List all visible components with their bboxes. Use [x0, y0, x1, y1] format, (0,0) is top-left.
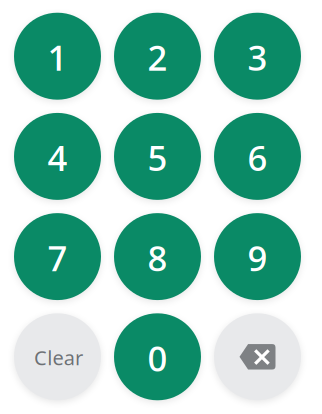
staticText: 4 — [47, 134, 67, 181]
button[interactable]: 4 — [14, 113, 101, 200]
button[interactable]: 2 — [114, 13, 201, 100]
staticText: 5 — [147, 134, 167, 181]
button[interactable]: 7 — [14, 213, 101, 300]
button[interactable]: 5 — [114, 113, 201, 200]
staticText: Clear — [34, 344, 83, 371]
staticText: 6 — [247, 134, 267, 181]
button[interactable]: 1 — [14, 13, 101, 100]
staticText: 7 — [47, 234, 67, 281]
staticText: 1 — [47, 34, 67, 81]
staticText: 2 — [147, 34, 167, 81]
staticText: 9 — [247, 234, 267, 281]
button[interactable]: 0 — [114, 313, 201, 400]
staticText: 8 — [147, 234, 167, 281]
button[interactable]: 3 — [214, 13, 301, 100]
button[interactable]: Delete — [214, 313, 301, 400]
staticText: 0 — [147, 334, 167, 382]
button[interactable]: 6 — [214, 113, 301, 200]
staticText: 3 — [247, 34, 267, 81]
button[interactable]: 8 — [114, 213, 201, 300]
button[interactable]: Clear — [14, 313, 101, 400]
button[interactable]: 9 — [214, 213, 301, 300]
